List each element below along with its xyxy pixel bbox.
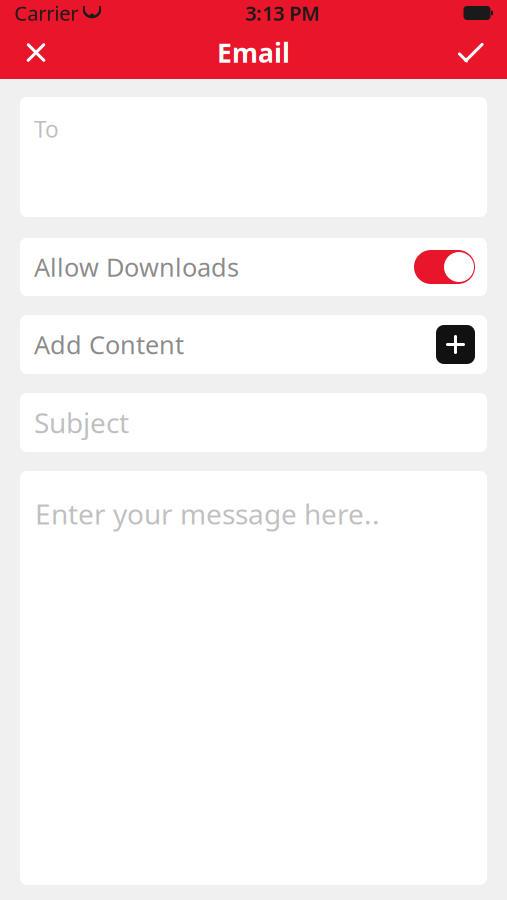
staticText: To	[34, 114, 59, 144]
staticText: Email	[217, 35, 290, 70]
staticText	[78, 0, 83, 26]
staticText: Subject	[34, 404, 129, 441]
staticText: Add Content	[34, 328, 184, 361]
button[interactable]: Close	[8, 26, 64, 79]
staticText: Enter your message here..	[35, 495, 380, 532]
staticText: 3:13 PM	[245, 0, 320, 26]
staticText: Allow Downloads	[34, 250, 239, 284]
button[interactable]: Enter your message here..	[20, 471, 487, 885]
staticText: Carrier	[14, 0, 78, 26]
button[interactable]: Send	[443, 26, 499, 79]
button[interactable]: Add Content	[20, 315, 487, 374]
button[interactable]: Allow Downloads	[20, 238, 487, 296]
button[interactable]: Subject	[20, 393, 487, 452]
